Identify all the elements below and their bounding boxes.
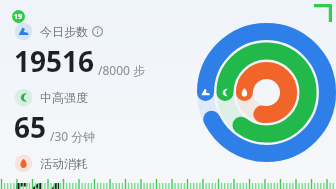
staticText: 今日步数 <box>40 24 88 39</box>
staticText: 514 <box>14 174 63 189</box>
staticText: 19516 <box>14 42 95 80</box>
button[interactable]: 活动消耗 <box>14 154 190 189</box>
staticText: 活动消耗 <box>40 156 88 171</box>
staticText: 65 <box>14 108 47 146</box>
staticText: 中高强度 <box>40 90 88 105</box>
button[interactable]: 今日步数 <box>14 22 190 80</box>
other: Activity rings <box>196 22 336 163</box>
staticText: /8000 步 <box>98 62 146 78</box>
button[interactable]: 中高强度 <box>14 88 190 146</box>
staticText: /30 分钟 <box>50 128 96 144</box>
button[interactable]: Notification badge <box>12 10 25 23</box>
staticText: 19 <box>14 12 23 22</box>
other: Info <box>92 26 103 37</box>
